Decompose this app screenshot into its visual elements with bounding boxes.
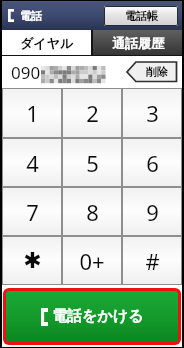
staticText: ✱ <box>23 248 42 274</box>
button[interactable]: 9 <box>122 187 182 236</box>
staticText: 1 <box>26 98 39 128</box>
staticText: 4 <box>26 148 39 178</box>
staticText: 2 <box>86 98 99 128</box>
button[interactable]: # <box>122 236 182 285</box>
button[interactable]: 2 <box>62 88 122 138</box>
button[interactable]: 1 <box>2 88 62 138</box>
button[interactable]: 3 <box>122 88 182 138</box>
button[interactable]: 電話をかける <box>6 291 178 342</box>
staticText: ダイヤル <box>20 35 74 51</box>
staticText: 通話履歴 <box>112 35 164 51</box>
button[interactable]: ダイヤル <box>2 30 91 55</box>
button[interactable]: 5 <box>62 138 122 187</box>
staticText: # <box>145 246 160 276</box>
staticText: 090 <box>11 61 41 84</box>
button[interactable]: 削除 <box>126 61 178 83</box>
staticText: 6 <box>146 148 159 178</box>
button[interactable]: ✱ <box>2 236 62 285</box>
staticText: 5 <box>86 148 99 178</box>
staticText: 3 <box>146 98 159 128</box>
staticText: 7 <box>26 197 39 227</box>
staticText: 0+ <box>79 246 105 276</box>
button[interactable]: 8 <box>62 187 122 236</box>
button[interactable]: 電話帳 <box>104 6 178 26</box>
button[interactable]: 6 <box>122 138 182 187</box>
staticText: 削除 <box>146 65 168 79</box>
staticText: 電話帳 <box>125 9 158 23</box>
button[interactable]: 4 <box>2 138 62 187</box>
button[interactable]: 通話履歴 <box>93 30 182 55</box>
staticText: 9 <box>146 197 159 227</box>
staticText: 8 <box>86 197 99 227</box>
button[interactable]: 0+ <box>62 236 122 285</box>
staticText: 電話をかける <box>52 307 144 326</box>
button[interactable]: 7 <box>2 187 62 236</box>
staticText: 電話 <box>20 9 42 23</box>
